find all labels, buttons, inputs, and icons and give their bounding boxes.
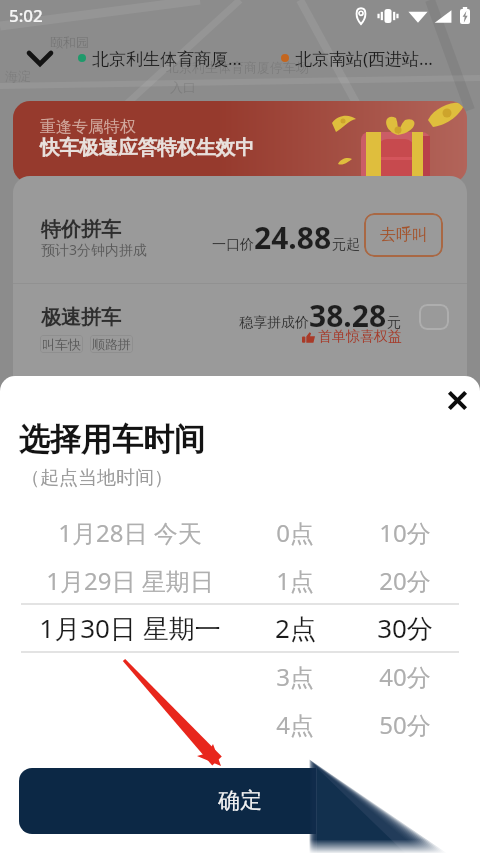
button[interactable]: 50分 xyxy=(330,700,480,748)
button[interactable]: 2点 xyxy=(260,604,330,652)
staticText: 0点 xyxy=(276,516,314,549)
button[interactable]: 极速拼车 xyxy=(27,284,453,384)
staticText: 去呼叫 xyxy=(380,225,428,245)
staticText: 叫车快 xyxy=(42,336,81,352)
staticText: 北京南站(西进站... xyxy=(295,47,433,70)
staticText: 顺路拼 xyxy=(92,336,131,352)
staticText: 稳享拼成价 xyxy=(239,314,309,332)
staticText: 北京利生体育商厦停车场 xyxy=(166,59,309,75)
staticText: 一口价 xyxy=(212,236,254,254)
button[interactable]: Collapse route xyxy=(10,41,70,75)
staticText: 1点 xyxy=(276,564,314,597)
button[interactable]: 北京利生体育商厦... xyxy=(78,41,242,75)
staticText: 10分 xyxy=(379,516,431,549)
button[interactable]: 20分 xyxy=(330,556,480,604)
staticText: 38.28 xyxy=(309,295,387,336)
button[interactable]: 4点 xyxy=(260,700,330,748)
staticText: 预计3分钟内拼成 xyxy=(41,240,148,259)
staticText: 颐和园 xyxy=(50,34,89,50)
staticText: 30分 xyxy=(377,610,433,646)
button[interactable]: 10分 xyxy=(330,508,480,556)
button[interactable]: 1点 xyxy=(260,556,330,604)
button[interactable]: 去呼叫 xyxy=(364,213,443,257)
staticText: 海淀 xyxy=(5,68,31,84)
staticText: 入口 xyxy=(170,79,196,95)
button[interactable]: 30分 xyxy=(330,604,480,652)
staticText: 快车极速应答特权生效中 xyxy=(40,135,255,160)
staticText: 1月28日 今天 xyxy=(58,516,202,549)
staticText: 重逢专属特权 xyxy=(40,117,136,137)
staticText: 24.88 xyxy=(254,217,332,258)
staticText: 2点 xyxy=(275,610,316,646)
staticText: 40分 xyxy=(379,660,431,693)
button[interactable]: 1月30日 星期一 xyxy=(0,604,260,652)
staticText: 1月29日 星期日 xyxy=(46,564,214,597)
staticText: 1月30日 星期一 xyxy=(39,610,221,646)
staticText: 4点 xyxy=(276,708,314,741)
staticText: 元起 xyxy=(332,236,360,254)
staticText: 首单惊喜权益 xyxy=(318,328,402,346)
staticText: 3点 xyxy=(276,660,314,693)
button[interactable]: 0点 xyxy=(260,508,330,556)
button[interactable]: 1月29日 星期日 xyxy=(0,556,260,604)
button[interactable]: 1月28日 今天 xyxy=(0,508,260,556)
staticText: 50分 xyxy=(379,708,431,741)
staticText: 极速拼车 xyxy=(41,305,121,330)
button[interactable]: 确定 xyxy=(19,768,461,834)
staticText: 北京利生体育商厦... xyxy=(92,47,242,70)
staticText: 特价拼车 xyxy=(41,217,121,242)
button[interactable]: 3点 xyxy=(260,652,330,700)
staticText: 选择用车时间 xyxy=(19,420,205,459)
button[interactable]: 北京南站(西进站... xyxy=(281,41,433,75)
staticText: 元 xyxy=(387,314,401,332)
button[interactable]: Close xyxy=(434,377,480,424)
button[interactable] xyxy=(0,652,260,700)
staticText: 5:02 xyxy=(9,4,43,27)
button[interactable]: Select ride option xyxy=(419,304,449,330)
staticText: （起点当地时间） xyxy=(21,466,173,490)
staticText: 20分 xyxy=(379,564,431,597)
staticText: 确定 xyxy=(218,787,262,815)
button[interactable] xyxy=(0,700,260,748)
button[interactable]: 特价拼车 xyxy=(27,176,453,283)
button[interactable]: 40分 xyxy=(330,652,480,700)
